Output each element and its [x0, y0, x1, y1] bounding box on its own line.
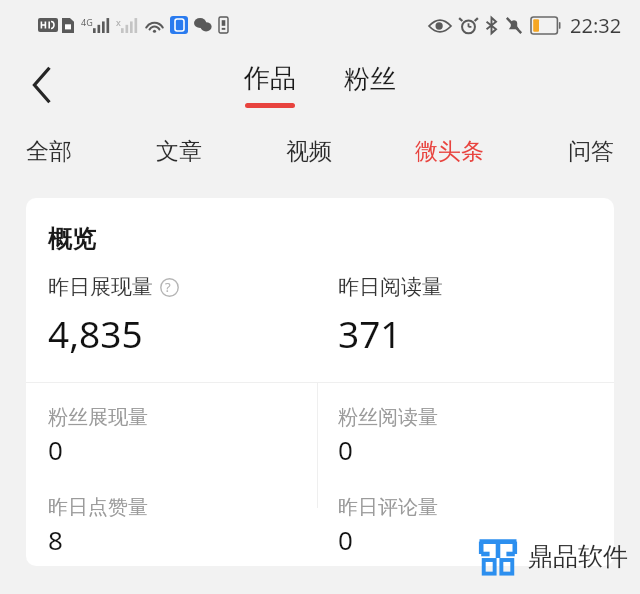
staticText: 视频 — [286, 137, 332, 166]
staticText: 文章 — [156, 137, 202, 166]
button[interactable]: 视频 — [278, 133, 340, 170]
staticText: 0 — [338, 432, 353, 467]
button[interactable]: 粉丝 — [334, 69, 406, 102]
staticText: 4G — [81, 16, 93, 28]
button[interactable]: 全部 — [18, 133, 80, 170]
staticText: 全部 — [26, 137, 72, 166]
staticText: 昨日展现量 — [48, 274, 153, 300]
staticText: 昨日评论量 — [338, 495, 438, 520]
button[interactable]: 概览 — [26, 198, 614, 566]
staticText: 微头条 — [415, 137, 484, 166]
button[interactable]: 作品 — [234, 62, 306, 108]
staticText: 粉丝展现量 — [48, 405, 148, 430]
staticText: 昨日阅读量 — [338, 274, 443, 300]
staticText: 22:32 — [570, 12, 622, 39]
staticText: 8 — [48, 522, 63, 557]
staticText: 问答 — [568, 137, 614, 166]
staticText: x — [116, 16, 121, 28]
staticText: 371 — [338, 308, 402, 358]
staticText: 昨日点赞量 — [48, 495, 148, 520]
staticText: 0 — [48, 432, 63, 467]
staticText: ? — [165, 278, 171, 296]
staticText: 粉丝阅读量 — [338, 405, 438, 430]
button[interactable]: Back — [16, 59, 68, 111]
staticText: 4,835 — [48, 308, 143, 358]
button[interactable]: 文章 — [148, 133, 210, 170]
staticText: 概览 — [48, 224, 96, 254]
staticText: 作品 — [244, 62, 296, 95]
staticText: 鼎品软件 — [528, 541, 628, 572]
button[interactable]: 微头条 — [407, 133, 492, 170]
staticText: 0 — [338, 522, 353, 557]
staticText: 粉丝 — [344, 63, 396, 96]
button[interactable]: 问答 — [560, 133, 622, 170]
